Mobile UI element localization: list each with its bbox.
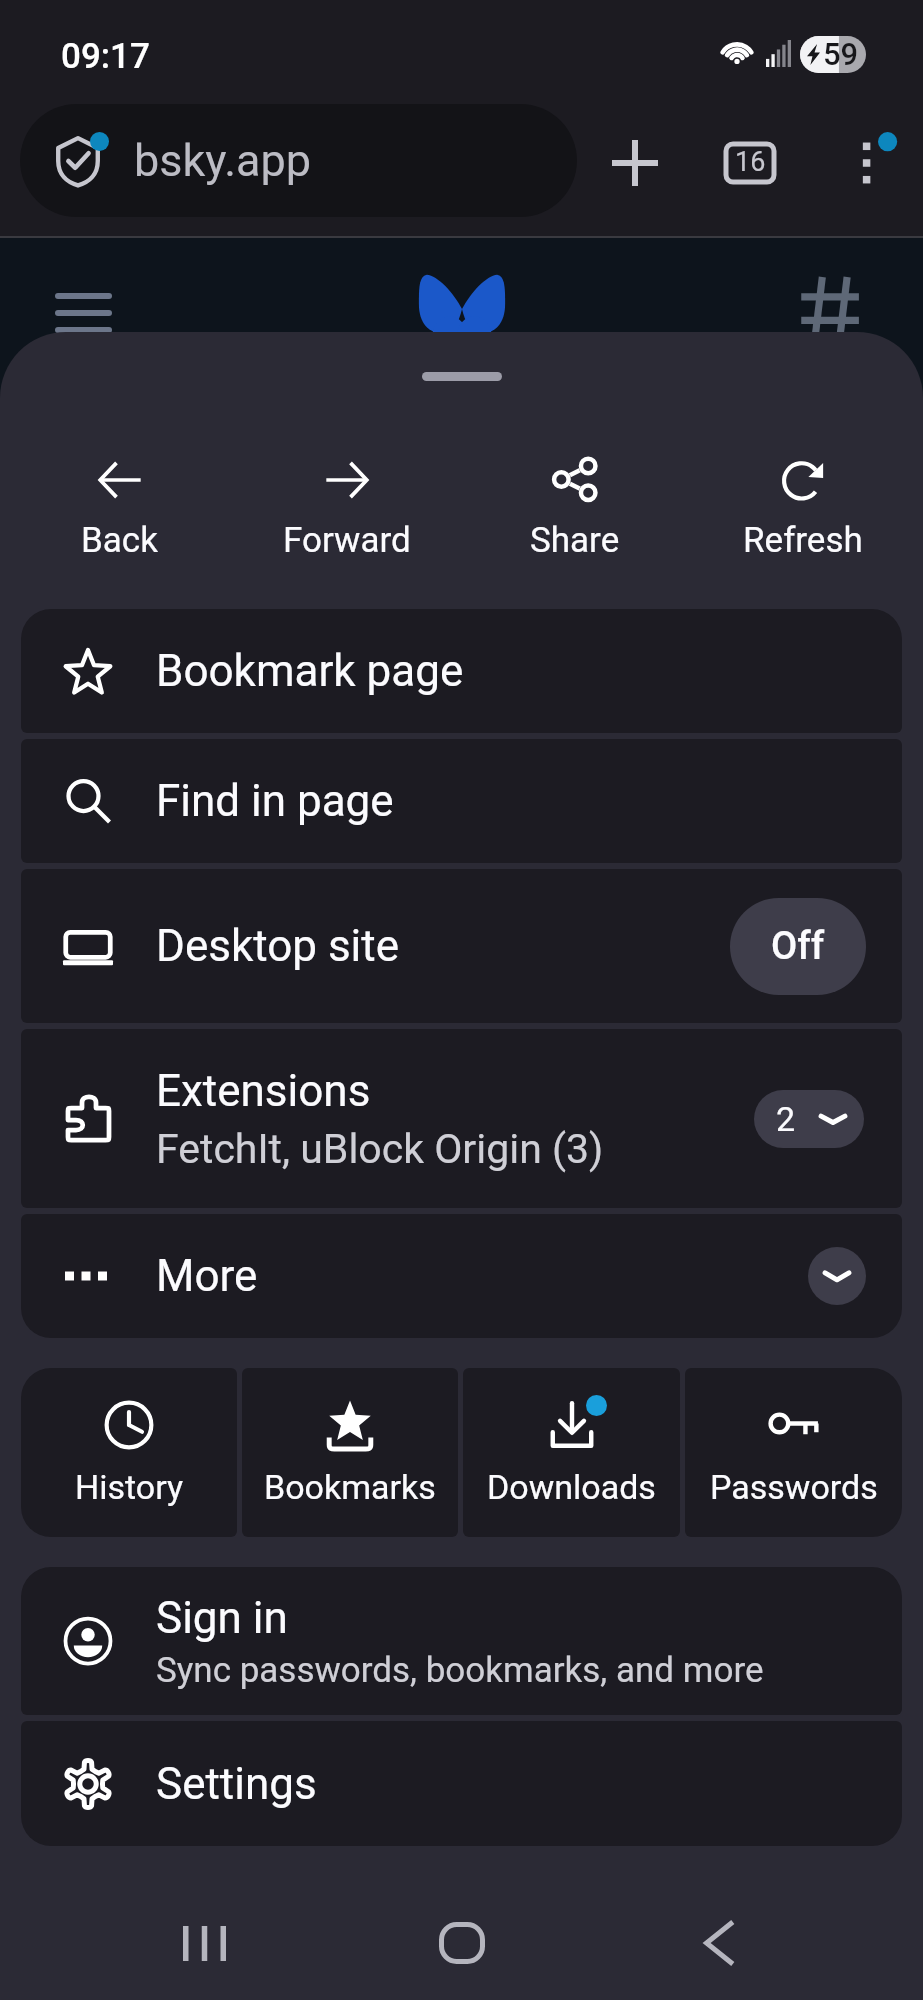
button[interactable]: Share [461,458,689,568]
button[interactable]: History [21,1368,237,1537]
button[interactable]: 2 [754,1090,864,1148]
button[interactable]: Off [730,898,866,995]
staticText: Desktop site [156,920,400,972]
staticText: Downloads [487,1467,656,1507]
button[interactable]: Settings [21,1721,902,1846]
staticText: Settings [156,1758,317,1810]
button[interactable]: Passwords [685,1368,902,1537]
staticText: Sign in [156,1592,288,1644]
staticText: Refresh [743,520,863,561]
button[interactable]: Sign in [21,1567,902,1715]
staticText: History [75,1467,184,1507]
staticText: Bookmark page [156,645,464,697]
button[interactable]: Bookmark page [21,609,902,733]
button[interactable]: Forward [233,458,461,568]
button[interactable]: New tab [590,118,680,208]
staticText: FetchIt, uBlock Origin (3) [156,1125,604,1173]
staticText: 16 [735,146,766,178]
staticText: More [156,1250,258,1302]
button[interactable]: Back [6,458,233,568]
button[interactable]: Tabs [705,118,795,208]
staticText: Find in page [156,775,394,827]
button[interactable]: Refresh [689,458,917,568]
staticText: Off [771,924,825,969]
button[interactable]: Find in page [21,739,902,863]
staticText: 2 [776,1099,796,1139]
button[interactable]: Extensions [21,1029,902,1208]
button[interactable]: Bookmarks [242,1368,458,1537]
button[interactable]: Home [407,1888,517,1998]
staticText: Forward [283,520,411,561]
button[interactable]: bsky.app [20,104,577,217]
staticText: Back [81,520,158,561]
button[interactable]: Expand [808,1247,866,1305]
staticText: Sync passwords, bookmarks, and more [156,1650,764,1691]
button[interactable]: Desktop site [21,869,902,1023]
button[interactable]: Downloads [463,1368,680,1537]
button[interactable]: Recents [149,1888,259,1998]
staticText: Extensions [156,1065,371,1117]
button[interactable]: More [21,1214,902,1338]
staticText: bsky.app [134,134,312,187]
staticText: Passwords [710,1467,878,1507]
button[interactable]: Back [665,1888,775,1998]
staticText: Share [530,520,620,561]
button[interactable]: More options [823,118,913,208]
staticText: 09:17 [61,36,150,77]
staticText: 59 [823,36,859,72]
staticText: Bookmarks [264,1467,436,1507]
